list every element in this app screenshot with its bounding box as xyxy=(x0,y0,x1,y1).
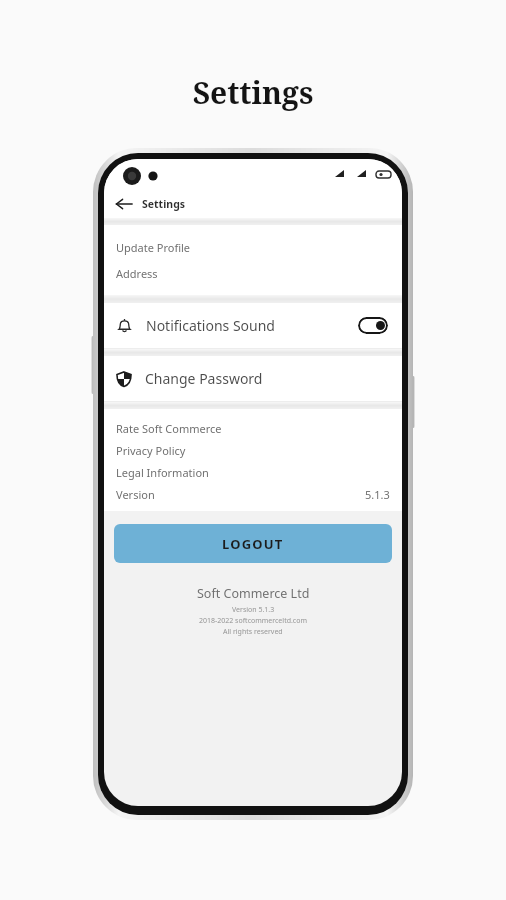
button[interactable]: Change Password xyxy=(104,356,402,401)
button[interactable]: Privacy Policy xyxy=(104,439,402,461)
staticText: Version xyxy=(116,487,365,502)
button[interactable]: Update Profile xyxy=(104,234,402,260)
staticText: Settings xyxy=(0,72,506,113)
button[interactable]: Version xyxy=(104,483,402,505)
staticText: Notifications Sound xyxy=(146,316,358,335)
staticText: 5.1.3 xyxy=(365,487,390,502)
staticText: Address xyxy=(116,266,158,281)
staticText: Settings xyxy=(142,197,186,211)
button[interactable]: Address xyxy=(104,260,402,286)
button[interactable]: Notifications Sound xyxy=(104,303,402,348)
button[interactable]: LOGOUT xyxy=(114,524,392,563)
button[interactable]: Rate Soft Commerce xyxy=(104,417,402,439)
staticText: 2018-2022 softcommerceltd.com xyxy=(199,616,307,626)
staticText: Legal Information xyxy=(116,465,209,480)
staticText: All rights reserved xyxy=(223,627,283,637)
button[interactable]: Notifications Sound toggle xyxy=(358,317,388,334)
button[interactable]: Back xyxy=(111,191,137,217)
staticText: Version 5.1.3 xyxy=(232,605,275,615)
button[interactable]: Legal Information xyxy=(104,461,402,483)
staticText: Soft Commerce Ltd xyxy=(197,585,310,602)
staticText: Rate Soft Commerce xyxy=(116,421,222,436)
staticText: Update Profile xyxy=(116,240,191,255)
staticText: Change Password xyxy=(145,369,263,388)
staticText: LOGOUT xyxy=(222,535,284,553)
staticText: Privacy Policy xyxy=(116,443,186,458)
